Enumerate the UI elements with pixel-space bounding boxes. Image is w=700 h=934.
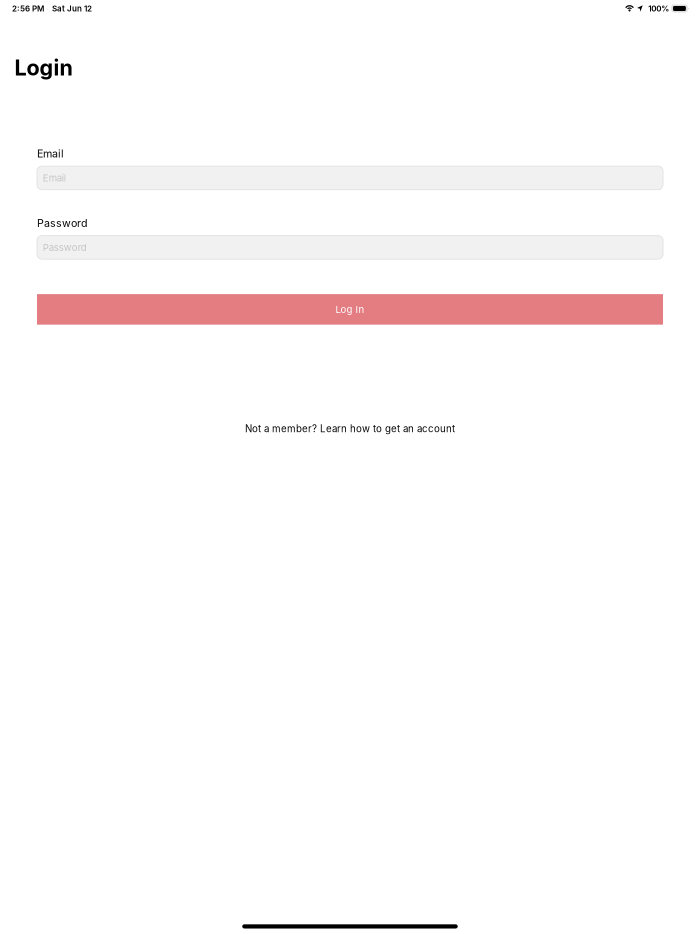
staticText: Email [37, 147, 64, 160]
staticText: 100% [648, 4, 669, 13]
button[interactable]: Not a member? Learn how to get an accoun… [245, 422, 455, 436]
staticText: Login [14, 54, 72, 81]
button[interactable]: Log In [37, 294, 663, 325]
staticText: Email [43, 172, 66, 184]
staticText: Password [43, 242, 87, 253]
staticText: Log In [335, 304, 364, 315]
staticText: Password [37, 217, 88, 230]
staticText: Not a member? Learn how to get an accoun… [245, 423, 455, 434]
staticText: 2:56 PM [12, 4, 44, 13]
button[interactable]: Password [37, 236, 663, 259]
button[interactable]: Email [37, 166, 663, 190]
staticText: Sat Jun 12 [52, 4, 92, 13]
